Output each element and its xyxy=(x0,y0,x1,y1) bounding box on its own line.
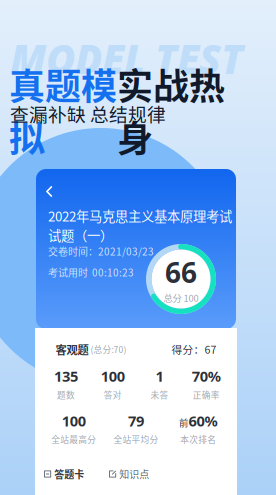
staticText: 前 xyxy=(179,416,188,429)
staticText: 交卷时间：2021/03/23 xyxy=(48,244,154,258)
staticText: (总分:70) xyxy=(88,343,126,355)
staticText: 未答 xyxy=(150,388,168,401)
staticText: 总分 100 xyxy=(163,291,198,304)
staticText: 答对 xyxy=(104,388,122,401)
staticText: 135 xyxy=(54,366,78,386)
button[interactable]: 知识点 xyxy=(109,467,165,481)
staticText: 题数 xyxy=(57,388,75,401)
staticText: 100 xyxy=(62,411,86,430)
staticText: 全站平均分 xyxy=(113,433,158,445)
staticText: 79 xyxy=(128,411,144,430)
staticText: 查漏补缺 总结规律 xyxy=(10,100,166,127)
staticText: 实战热身 xyxy=(117,58,225,162)
staticText: 100 xyxy=(101,366,125,386)
staticText: 本次排名 xyxy=(180,433,216,445)
staticText: 真题模拟 xyxy=(9,58,117,162)
staticText: 70% xyxy=(192,366,221,386)
staticText: 1 xyxy=(155,366,163,386)
staticText: 得分：67 xyxy=(171,341,216,357)
staticText: 正确率 xyxy=(193,388,220,401)
staticText: MODEL TEST xyxy=(10,32,243,85)
staticText: 客观题 xyxy=(55,341,88,357)
staticText: 考试用时 00:10:23 xyxy=(48,265,134,279)
staticText: 66 xyxy=(165,254,197,291)
staticText: 2022年马克思主义基本原理考试试题（一） xyxy=(48,206,232,245)
staticText: 答题卡 xyxy=(54,467,84,481)
button[interactable]: 答题卡 xyxy=(44,467,100,481)
staticText: 全站最高分 xyxy=(51,433,96,445)
staticText: 60% xyxy=(189,411,218,430)
staticText: 知识点 xyxy=(119,467,149,481)
